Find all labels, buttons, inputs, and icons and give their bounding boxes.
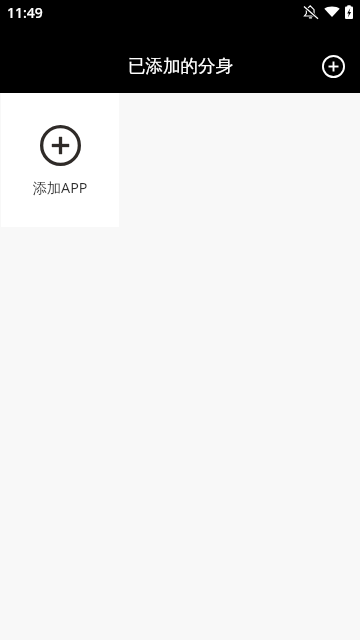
staticText: 已添加的分身 xyxy=(128,55,233,77)
staticText: 添加APP xyxy=(32,178,88,198)
button[interactable]: Add clone xyxy=(313,46,353,86)
button[interactable]: 添加APP xyxy=(1,93,119,227)
staticText: 11:49 xyxy=(7,3,43,22)
